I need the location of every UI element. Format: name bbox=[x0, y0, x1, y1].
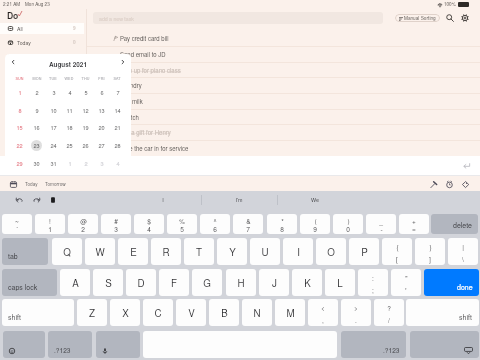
button[interactable]: 24 bbox=[48, 140, 59, 151]
button[interactable]: S bbox=[93, 269, 123, 296]
button[interactable]: Undo bbox=[14, 195, 24, 205]
button[interactable]: ? bbox=[374, 299, 404, 326]
button[interactable]: done bbox=[424, 269, 479, 296]
button[interactable]: 6 bbox=[96, 87, 107, 98]
button[interactable]: Z bbox=[77, 299, 107, 326]
button[interactable]: Manual Sorting bbox=[395, 14, 440, 22]
button[interactable]: 9 bbox=[31, 105, 42, 116]
button[interactable]: 1 bbox=[64, 158, 75, 169]
button[interactable]: > bbox=[341, 299, 371, 326]
button[interactable]: T bbox=[184, 238, 214, 265]
button[interactable]: mic bbox=[96, 331, 140, 358]
button[interactable]: ( bbox=[300, 214, 330, 234]
button[interactable]: Tag bbox=[460, 179, 471, 190]
button[interactable]: Tomorrow bbox=[43, 179, 68, 190]
button[interactable]: 22 bbox=[14, 140, 25, 151]
button[interactable]: Q bbox=[52, 238, 82, 265]
button[interactable]: G bbox=[192, 269, 222, 296]
button[interactable]: : bbox=[358, 269, 388, 296]
button[interactable]: Buy milk bbox=[87, 93, 480, 109]
button[interactable]: 28 bbox=[112, 140, 123, 151]
button[interactable]: 2 bbox=[80, 158, 91, 169]
button[interactable]: % bbox=[167, 214, 197, 234]
button[interactable]: 20 bbox=[96, 122, 107, 133]
button[interactable]: Previous month bbox=[8, 57, 18, 67]
button[interactable]: .?123 bbox=[48, 331, 92, 358]
button[interactable]: Today bbox=[0, 37, 84, 48]
button[interactable]: .?123 bbox=[341, 331, 406, 358]
button[interactable]: * bbox=[267, 214, 297, 234]
button[interactable]: 5 bbox=[80, 87, 91, 98]
button[interactable]: J bbox=[259, 269, 289, 296]
button[interactable]: } bbox=[415, 238, 445, 265]
button[interactable]: Pay credit card bill bbox=[87, 30, 480, 46]
button[interactable]: P bbox=[349, 238, 379, 265]
button[interactable]: Pick date bbox=[9, 180, 18, 189]
button[interactable]: 2 bbox=[31, 87, 42, 98]
button[interactable]: 10 bbox=[48, 105, 59, 116]
button[interactable]: B bbox=[209, 299, 239, 326]
button[interactable]: 3 bbox=[48, 87, 59, 98]
button[interactable]: 26 bbox=[80, 140, 91, 151]
button[interactable]: 25 bbox=[64, 140, 75, 151]
button[interactable]: I'm bbox=[201, 191, 277, 208]
button[interactable]: O bbox=[316, 238, 346, 265]
button[interactable]: 31 bbox=[48, 158, 59, 169]
button[interactable]: ! bbox=[35, 214, 65, 234]
button[interactable]: 29 bbox=[14, 158, 25, 169]
button[interactable]: hide bbox=[410, 331, 479, 358]
button[interactable]: C bbox=[143, 299, 173, 326]
button[interactable]: ~ bbox=[2, 214, 32, 234]
button[interactable]: All bbox=[0, 23, 84, 34]
button[interactable]: shift bbox=[406, 299, 479, 326]
button[interactable]: I bbox=[283, 238, 313, 265]
button[interactable]: 17 bbox=[48, 122, 59, 133]
button[interactable]: Settings bbox=[459, 12, 471, 24]
button[interactable]: Take the car in for service bbox=[87, 140, 480, 156]
button[interactable]: tab bbox=[2, 238, 48, 265]
button[interactable]: 13 bbox=[96, 105, 107, 116]
button[interactable]: < bbox=[308, 299, 338, 326]
button[interactable]: Planned bbox=[0, 51, 84, 62]
button[interactable]: Next month bbox=[118, 57, 128, 67]
button[interactable]: H bbox=[226, 269, 256, 296]
button[interactable]: @ bbox=[68, 214, 98, 234]
button[interactable]: 14 bbox=[112, 105, 123, 116]
button[interactable]: 11 bbox=[64, 105, 75, 116]
button[interactable]: R bbox=[151, 238, 181, 265]
button[interactable]: { bbox=[382, 238, 412, 265]
button[interactable]: # bbox=[101, 214, 131, 234]
button[interactable]: + bbox=[399, 214, 429, 234]
button[interactable]: We bbox=[277, 191, 353, 208]
button[interactable]: D bbox=[126, 269, 156, 296]
button[interactable]: 8 bbox=[14, 105, 25, 116]
button[interactable]: 12 bbox=[80, 105, 91, 116]
button[interactable]: Reminder bbox=[444, 179, 455, 190]
button[interactable]: | bbox=[448, 238, 478, 265]
button[interactable]: Today bbox=[23, 179, 40, 190]
button[interactable]: Get a gift for Henry bbox=[87, 124, 480, 140]
button[interactable]: X bbox=[110, 299, 140, 326]
button[interactable]: 21 bbox=[112, 122, 123, 133]
button[interactable]: Paste bbox=[48, 195, 58, 205]
button[interactable]: delete bbox=[431, 214, 478, 234]
button[interactable]: ^ bbox=[200, 214, 230, 234]
button[interactable]: caps lock bbox=[2, 269, 57, 296]
button[interactable]: 18 bbox=[64, 122, 75, 133]
button[interactable]: _ bbox=[366, 214, 396, 234]
button[interactable]: F bbox=[159, 269, 189, 296]
button[interactable]: Search bbox=[444, 12, 456, 24]
button[interactable]: 7 bbox=[112, 87, 123, 98]
button[interactable]: ) bbox=[333, 214, 363, 234]
button[interactable]: 23 bbox=[31, 140, 42, 151]
button[interactable]: 30 bbox=[31, 158, 42, 169]
button[interactable]: 3 bbox=[96, 158, 107, 169]
button[interactable]: M bbox=[275, 299, 305, 326]
button[interactable]: 19 bbox=[80, 122, 91, 133]
button[interactable]: 16 bbox=[31, 122, 42, 133]
button[interactable]: Send email to JD bbox=[87, 46, 480, 62]
button[interactable]: V bbox=[176, 299, 206, 326]
